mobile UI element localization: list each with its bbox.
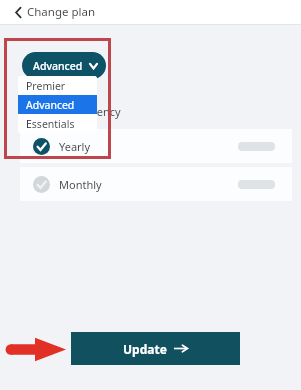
staticText: Advanced <box>33 59 83 73</box>
button[interactable]: Yearly <box>20 129 292 163</box>
staticText: Change plan <box>27 4 96 20</box>
button[interactable]: Update <box>71 332 240 365</box>
staticText: Premier <box>26 79 66 93</box>
button[interactable]: Premier <box>18 76 97 95</box>
button[interactable]: Advanced <box>18 95 97 114</box>
staticText: Monthly <box>59 177 102 192</box>
button[interactable]: Monthly <box>20 167 292 201</box>
staticText: Billing frequency <box>34 104 121 119</box>
staticText: Yearly <box>59 139 91 154</box>
other: Pointer highlighting Update button <box>4 337 66 362</box>
button[interactable]: Essentials <box>18 114 97 133</box>
button[interactable]: Change plan <box>13 0 98 24</box>
staticText: Update <box>123 341 167 357</box>
staticText: Advanced <box>26 98 75 112</box>
button[interactable]: Advanced <box>22 52 106 79</box>
staticText: Essentials <box>26 117 75 131</box>
